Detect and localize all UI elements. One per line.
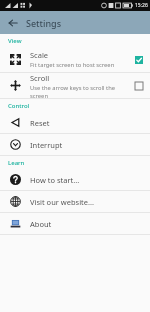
- staticText: How to start...: [30, 175, 80, 185]
- staticText: Reset: [30, 118, 50, 128]
- staticText: Scale: [30, 50, 49, 60]
- staticText: 15:26: [135, 2, 148, 9]
- staticText: Settings: [26, 17, 62, 29]
- staticText: Learn: [8, 159, 25, 167]
- button[interactable]: About: [0, 213, 150, 234]
- button[interactable]: Reset: [0, 112, 150, 133]
- button[interactable]: Scale: [0, 47, 150, 72]
- button[interactable]: Scroll: [0, 73, 150, 98]
- staticText: Scroll: [30, 73, 50, 83]
- staticText: View: [8, 37, 22, 45]
- staticText: Control: [8, 102, 30, 110]
- button[interactable]: Back: [4, 14, 22, 32]
- button[interactable]: Interrupt: [0, 134, 150, 155]
- button[interactable]: How to start...: [0, 169, 150, 190]
- staticText: Visit our website...: [30, 197, 95, 207]
- staticText: About: [30, 219, 52, 229]
- staticText: Interrupt: [30, 140, 63, 150]
- staticText: Use the arrow keys to scroll the screen: [30, 84, 128, 98]
- button[interactable]: Visit our website...: [0, 191, 150, 212]
- staticText: Fit target screen to host screen: [30, 61, 115, 69]
